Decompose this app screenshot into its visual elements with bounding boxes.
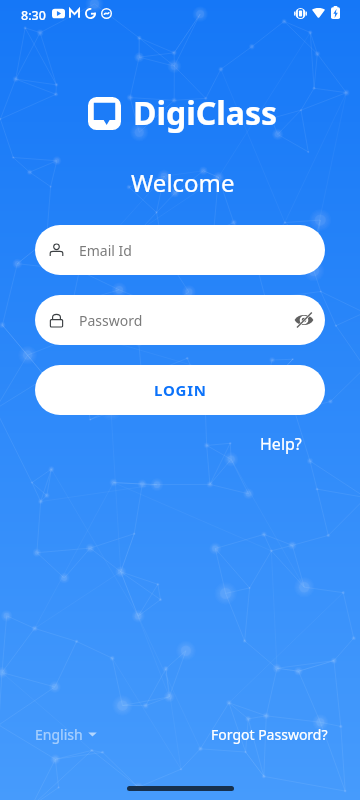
button[interactable]: Show password (293, 309, 315, 331)
staticText: DigiClass (133, 91, 278, 135)
button[interactable]: Help? (260, 433, 302, 455)
button[interactable]: English (35, 725, 97, 744)
staticText: Forgot Password? (211, 725, 328, 744)
button[interactable]: Password (35, 295, 325, 345)
staticText: English (35, 725, 83, 744)
staticText: 8:30 (21, 7, 46, 24)
button[interactable]: Forgot Password? (211, 725, 328, 744)
staticText: Welcome (131, 166, 235, 199)
staticText: Help? (260, 433, 302, 455)
button[interactable]: Email Id (35, 225, 325, 275)
button[interactable]: LOGIN (35, 365, 325, 415)
staticText: Password (79, 311, 143, 330)
staticText: LOGIN (154, 380, 207, 400)
staticText: Email Id (79, 241, 132, 260)
